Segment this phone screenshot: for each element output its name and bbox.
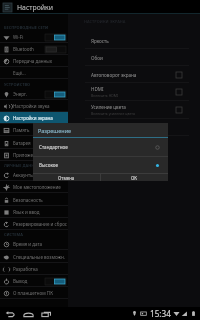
button[interactable]: Передача данных <box>0 55 68 67</box>
staticText: Вывод <box>13 278 28 284</box>
button[interactable]: Яркость <box>68 32 200 49</box>
staticText: БЕСПРОВОДНЫЕ СЕТИ <box>4 25 68 30</box>
button[interactable]: ОК <box>101 174 168 181</box>
staticText: 15:34 <box>150 308 171 319</box>
button[interactable]: О планшетном ПК <box>0 287 68 299</box>
staticText: Память <box>13 127 30 133</box>
button[interactable]: Язык и ввод <box>0 206 68 218</box>
button[interactable]: Батарея <box>0 137 68 149</box>
staticText: Разработка <box>13 266 38 272</box>
button[interactable]: Приложения <box>0 149 68 161</box>
button[interactable]: Switch off <box>45 46 66 53</box>
staticText: Автоповорот экрана <box>91 72 137 78</box>
staticText: HDMI <box>91 86 104 92</box>
staticText: Высокое <box>39 162 59 168</box>
button[interactable]: Wi-Fi <box>0 31 68 43</box>
staticText: Мое местоположение <box>13 184 61 190</box>
button[interactable]: Аккаунты <box>0 169 68 181</box>
button[interactable]: Обои <box>68 49 200 66</box>
button[interactable]: Ещё... <box>0 67 68 79</box>
button[interactable]: Энерг. <box>0 88 68 100</box>
staticText: Язык и ввод <box>13 209 40 215</box>
staticText: Яркость <box>91 38 109 44</box>
staticText: Аккаунты <box>13 172 34 178</box>
button[interactable]: Отмена <box>33 174 100 181</box>
button[interactable]: Настройки экрана <box>0 112 68 124</box>
staticText: Батарея <box>13 140 31 146</box>
staticText: Wi-Fi <box>13 34 24 40</box>
button[interactable]: Вывод <box>0 275 68 287</box>
staticText: Включить усиление цвета <box>91 111 135 116</box>
staticText: ЛИЧНЫЕ ДАННЫЕ <box>4 163 68 168</box>
button[interactable]: Switch on <box>45 91 66 98</box>
staticText: О планшетном ПК <box>13 290 53 296</box>
button[interactable]: Switch on <box>45 278 66 285</box>
staticText: Резервирование и сброс <box>13 221 68 227</box>
button[interactable]: Настройки звука <box>0 100 68 112</box>
staticText: Настройки звука <box>13 103 50 109</box>
staticText: Отмена <box>58 175 75 181</box>
staticText: УСТРОЙСТВО <box>4 82 68 87</box>
button[interactable]: Специальные возможн. <box>0 251 68 263</box>
staticText: Bluetooth <box>13 46 34 52</box>
button[interactable]: Recent apps <box>40 307 53 320</box>
button[interactable]: Усиление цвета <box>68 101 200 119</box>
button[interactable]: Время и дата <box>0 238 68 250</box>
button[interactable]: Стандартное <box>33 138 168 156</box>
staticText: НАСТРОЙКИ ЭКРАНА <box>84 19 126 24</box>
staticText: Разрешение <box>38 127 72 134</box>
staticText: Включить HDMI <box>91 93 119 98</box>
button[interactable]: Резервирование и сброс <box>0 218 68 230</box>
staticText: Энерг. <box>13 91 27 97</box>
staticText: Усиление цвета <box>91 104 126 110</box>
staticText: Приложения <box>13 152 42 158</box>
staticText: ОК <box>131 175 138 181</box>
staticText: Специальные возможн. <box>13 254 65 260</box>
staticText: Ещё... <box>13 70 26 76</box>
button[interactable]: Разрешение <box>68 119 200 136</box>
staticText: Стандартное <box>39 144 68 150</box>
staticText: Безопасность <box>13 197 43 203</box>
staticText: Время и дата <box>13 241 43 247</box>
button[interactable]: Home <box>22 307 35 320</box>
button[interactable]: Settings <box>3 3 12 12</box>
button[interactable]: Высокое <box>33 157 168 173</box>
button[interactable]: Память <box>0 124 68 136</box>
staticText: Передача данных <box>13 58 52 64</box>
button[interactable]: Разработка <box>0 263 68 275</box>
button[interactable]: Безопасность <box>0 194 68 206</box>
staticText: СИСТЕМА <box>4 232 68 237</box>
button[interactable]: Мое местоположение <box>0 181 68 193</box>
staticText: Обои <box>91 55 103 61</box>
button[interactable]: Back <box>4 307 17 320</box>
button[interactable]: Switch on <box>45 34 66 41</box>
button[interactable]: Bluetooth <box>0 43 68 55</box>
staticText: Настройки <box>17 3 54 12</box>
staticText: Настройки экрана <box>13 115 53 121</box>
button[interactable]: HDMI <box>68 83 200 101</box>
button[interactable]: Автоповорот экрана <box>68 66 200 83</box>
